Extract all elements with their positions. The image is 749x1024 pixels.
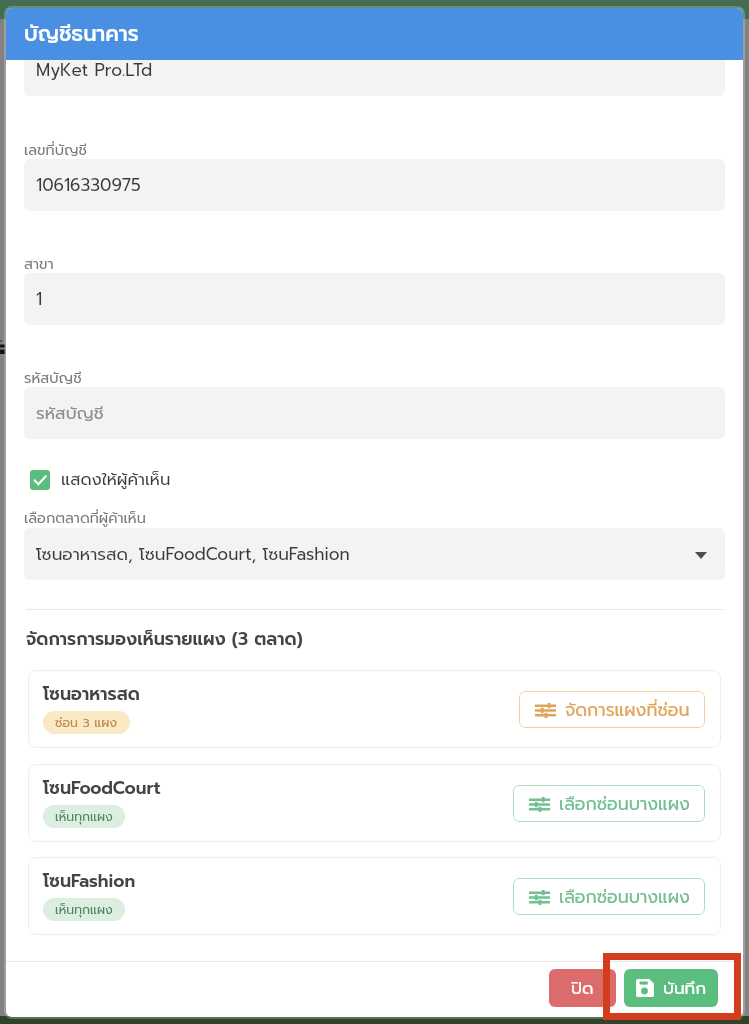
staticText: รหัสบัญชี [24, 367, 82, 389]
staticText: บัญชีธนาคาร [24, 18, 139, 50]
button[interactable]: บันทึก [624, 969, 718, 1007]
button[interactable]: โซนFashion [28, 857, 721, 935]
button[interactable]: โซนอาหารสด, โซนFoodCourt, โซนFashion [24, 528, 725, 580]
button[interactable]: จัดการแผงที่ซ่อน [519, 691, 705, 728]
staticText: ปิด [571, 975, 594, 1001]
staticText: แสดงให้ผู้ค้าเห็น [61, 467, 171, 492]
staticText: โซนFashion [43, 868, 136, 894]
staticText: 10616330975 [36, 172, 141, 198]
staticText: 1 [36, 286, 43, 312]
button[interactable]: 10616330975 [24, 159, 725, 211]
staticText: รหัสบัญชี [36, 400, 104, 426]
staticText: โซนอาหารสด, โซนFoodCourt, โซนFashion [36, 541, 350, 567]
button[interactable]: เลือกซ่อนบางแผง [513, 878, 705, 915]
button[interactable]: เลือกซ่อนบางแผง [513, 785, 705, 822]
button[interactable]: บัญชีธนาคาร [6, 8, 743, 60]
staticText: เลือกตลาดที่ผู้ค้าเห็น [24, 507, 146, 529]
staticText: เลขที่บัญชี [24, 139, 88, 161]
staticText: เลือกซ่อนบางแผง [559, 791, 690, 817]
staticText: เห็นทุกแผง [55, 900, 113, 919]
staticText: จัดการการมองเห็นรายแผง (3 ตลาด) [26, 626, 303, 652]
staticText: โซนFoodCourt [43, 775, 161, 801]
button[interactable]: 1 [24, 273, 725, 325]
button[interactable]: ปิด [549, 969, 616, 1007]
button[interactable]: MyKet Pro.LTd [24, 44, 725, 96]
staticText: เห็นทุกแผง [55, 807, 113, 826]
staticText: MyKet Pro.LTd [36, 57, 153, 83]
button[interactable]: รหัสบัญชี [24, 387, 725, 439]
staticText: โซนอาหารสด [43, 681, 140, 707]
button[interactable]: แสดงให้ผู้ค้าเห็น [30, 467, 171, 492]
staticText: ซ่อน 3 แผง [55, 713, 118, 732]
staticText: บันทึก [663, 975, 707, 1001]
staticText: จัดการแผงที่ซ่อน [565, 697, 690, 723]
staticText: สาขา [24, 253, 54, 275]
staticText: เลือกซ่อนบางแผง [559, 884, 690, 910]
button[interactable]: โซนFoodCourt [28, 764, 721, 842]
button[interactable]: โซนอาหารสด [28, 670, 721, 748]
